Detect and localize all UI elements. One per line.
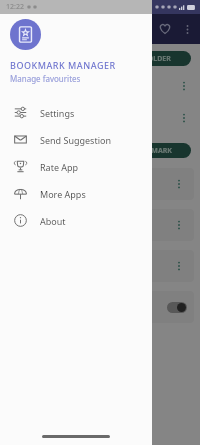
staticText: FAVOURITES — [8, 75, 70, 89]
button[interactable]: About — [0, 207, 152, 234]
staticText: ADD BOOKMARK — [114, 146, 172, 156]
button[interactable]: Options — [176, 110, 192, 126]
staticText: PERSONAL — [8, 107, 61, 121]
button[interactable]: Rate App — [0, 153, 152, 180]
button[interactable]: Options — [6, 250, 194, 282]
staticText: 12:22 — [6, 2, 24, 12]
staticText: More Apps — [40, 188, 86, 200]
button[interactable]: More Apps — [0, 180, 152, 207]
button[interactable]: Settings — [0, 99, 152, 126]
button[interactable]: ADD FOLDER — [107, 51, 191, 66]
button[interactable]: More options — [177, 19, 197, 39]
staticText: Settings — [40, 107, 75, 119]
staticText: BOOKMARK MANAGER — [10, 59, 116, 71]
staticText: Manage favourites — [10, 73, 81, 84]
staticText: About — [40, 215, 66, 227]
button[interactable]: FAVOURITES — [8, 73, 192, 99]
button[interactable]: Options — [171, 217, 187, 233]
button[interactable]: Toggle — [167, 302, 187, 313]
button[interactable]: Options — [171, 258, 187, 274]
button[interactable]: Send Suggestion — [0, 126, 152, 153]
button[interactable]: Favourites — [153, 17, 177, 41]
staticText: Rate App — [40, 161, 79, 173]
button[interactable]: Options — [6, 209, 194, 241]
button[interactable]: Options — [6, 168, 194, 200]
staticText: Send Suggestion — [40, 134, 111, 146]
button[interactable]: Options — [171, 176, 187, 192]
button[interactable]: PERSONAL — [8, 105, 192, 131]
button[interactable]: ADD BOOKMARK — [95, 143, 191, 158]
button[interactable]: Options — [176, 78, 192, 94]
staticText: ADD FOLDER — [127, 54, 171, 64]
button[interactable]: Toggle — [6, 291, 194, 323]
